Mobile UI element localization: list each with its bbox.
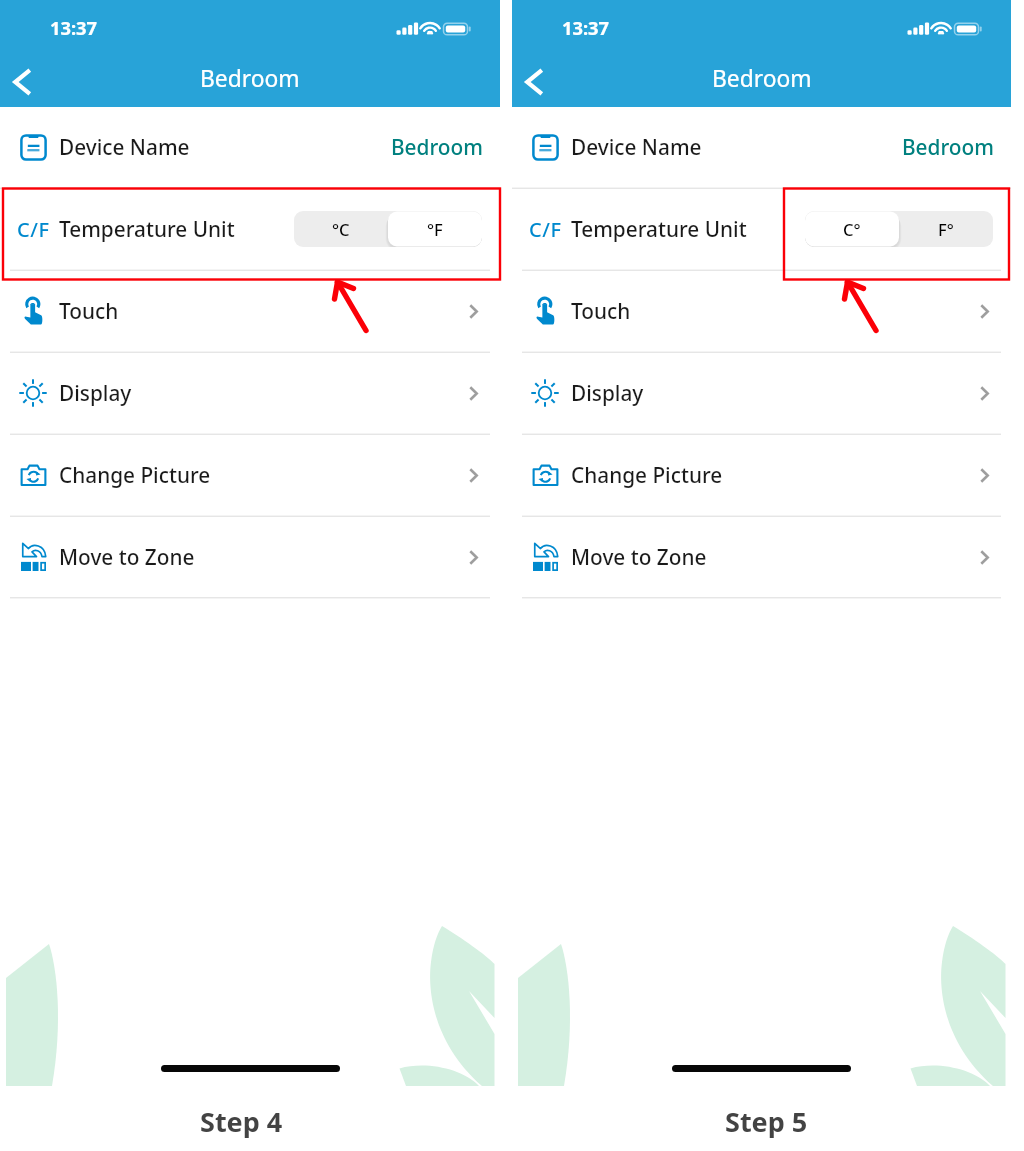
button[interactable]: Display — [512, 357, 1011, 429]
staticText: Device Name — [571, 133, 702, 161]
button[interactable]: Change Picture — [0, 439, 500, 511]
staticText: C/F — [529, 216, 562, 243]
button[interactable]: Touch — [0, 275, 500, 347]
button[interactable]: Device Name — [0, 111, 500, 183]
button[interactable]: Move to Zone — [0, 521, 500, 593]
staticText: Step 4 — [200, 1103, 283, 1140]
staticText: Bedroom — [902, 133, 994, 161]
staticText: Bedroom — [712, 63, 812, 94]
staticText: Temperature Unit — [59, 215, 235, 243]
staticText: Display — [571, 379, 644, 407]
button[interactable]: C/F — [0, 193, 500, 265]
button[interactable]: Back — [0, 60, 44, 104]
button[interactable]: C/F — [512, 193, 1011, 265]
staticText: Touch — [571, 297, 631, 325]
button[interactable]: °C — [294, 211, 388, 247]
button[interactable]: Device Name — [512, 111, 1011, 183]
button[interactable]: Touch — [512, 275, 1011, 347]
button[interactable]: Change Picture — [512, 439, 1011, 511]
staticText: Device Name — [59, 133, 190, 161]
staticText: °C — [332, 218, 350, 240]
staticText: 13:37 — [562, 15, 610, 40]
button[interactable]: Display — [0, 357, 500, 429]
staticText: Temperature Unit — [571, 215, 747, 243]
staticText: C/F — [17, 216, 50, 243]
staticText: Move to Zone — [571, 543, 707, 571]
staticText: Move to Zone — [59, 543, 195, 571]
button[interactable]: Back — [512, 60, 556, 104]
staticText: C° — [843, 218, 861, 240]
staticText: Step 5 — [725, 1103, 808, 1140]
button[interactable]: F° — [899, 211, 993, 247]
staticText: F° — [938, 218, 954, 240]
staticText: °F — [427, 218, 443, 240]
button[interactable]: °F — [388, 211, 482, 247]
staticText: Bedroom — [391, 133, 483, 161]
staticText: 13:37 — [50, 15, 98, 40]
staticText: Touch — [59, 297, 119, 325]
button[interactable]: C° — [805, 211, 899, 247]
staticText: Display — [59, 379, 132, 407]
staticText: Change Picture — [571, 461, 723, 489]
staticText: Bedroom — [200, 63, 300, 94]
staticText: Change Picture — [59, 461, 211, 489]
button[interactable]: Move to Zone — [512, 521, 1011, 593]
